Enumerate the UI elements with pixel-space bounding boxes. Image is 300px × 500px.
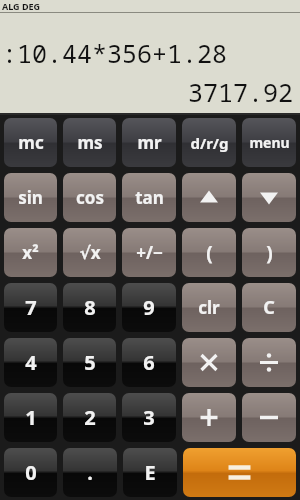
button[interactable]: 9 (122, 283, 176, 332)
button[interactable]: 8 (63, 283, 116, 332)
staticText: 3 (143, 404, 155, 431)
button[interactable]: mc (4, 118, 57, 167)
button[interactable]: Scroll down (242, 173, 296, 222)
staticText: 1 (25, 404, 37, 431)
staticText: :10.44*356+1.28 (2, 36, 228, 70)
staticText: ) (266, 240, 273, 266)
staticText: E (144, 459, 156, 486)
staticText: menu (249, 133, 290, 152)
staticText: 6 (143, 349, 155, 376)
button[interactable]: Plus (182, 393, 236, 442)
staticText: mr (137, 131, 162, 154)
button[interactable]: Scroll up (182, 173, 236, 222)
button[interactable]: 1 (4, 393, 57, 442)
button[interactable]: x² (4, 228, 57, 277)
button[interactable]: 5 (63, 338, 116, 387)
staticText: 4 (25, 349, 37, 376)
staticText: 8 (84, 294, 96, 321)
button[interactable]: 4 (4, 338, 57, 387)
button[interactable]: 3 (122, 393, 176, 442)
button[interactable]: Minus (242, 393, 296, 442)
staticText: C (263, 295, 275, 320)
button[interactable]: clr (182, 283, 236, 332)
button[interactable]: 0 (4, 448, 57, 497)
staticText: 3717.92 (188, 75, 294, 109)
staticText: cos (76, 186, 104, 209)
button[interactable]: +/− (122, 228, 176, 277)
staticText: √x (79, 241, 101, 264)
staticText: clr (198, 296, 220, 319)
button[interactable]: 2 (63, 393, 116, 442)
button[interactable]: 6 (122, 338, 176, 387)
staticText: ms (77, 131, 103, 154)
staticText: ALG DEG (2, 0, 41, 12)
button[interactable]: ms (63, 118, 116, 167)
button[interactable]: menu (242, 118, 296, 167)
button[interactable]: 7 (4, 283, 57, 332)
staticText: x² (22, 241, 39, 264)
staticText: . (87, 459, 93, 486)
button[interactable]: Equals (183, 448, 296, 497)
staticText: +/− (136, 241, 163, 264)
staticText: 0 (25, 459, 37, 486)
staticText: mc (18, 131, 44, 154)
staticText: d/r/g (190, 133, 229, 153)
staticText: sin (18, 186, 43, 209)
button[interactable]: ) (242, 228, 296, 277)
button[interactable]: mr (122, 118, 176, 167)
staticText: ( (206, 240, 213, 266)
button[interactable]: Divide (242, 338, 296, 387)
button[interactable]: E (123, 448, 177, 497)
staticText: 7 (25, 294, 37, 321)
button[interactable]: ( (182, 228, 236, 277)
button[interactable]: . (63, 448, 117, 497)
staticText: 9 (143, 294, 155, 321)
staticText: tan (135, 186, 164, 209)
button[interactable]: √x (63, 228, 116, 277)
button[interactable]: cos (63, 173, 116, 222)
staticText: 5 (84, 349, 96, 376)
button[interactable]: Multiply (182, 338, 236, 387)
button[interactable]: tan (122, 173, 176, 222)
button[interactable]: d/r/g (182, 118, 236, 167)
button[interactable]: sin (4, 173, 57, 222)
staticText: 2 (84, 404, 96, 431)
button[interactable]: C (242, 283, 296, 332)
